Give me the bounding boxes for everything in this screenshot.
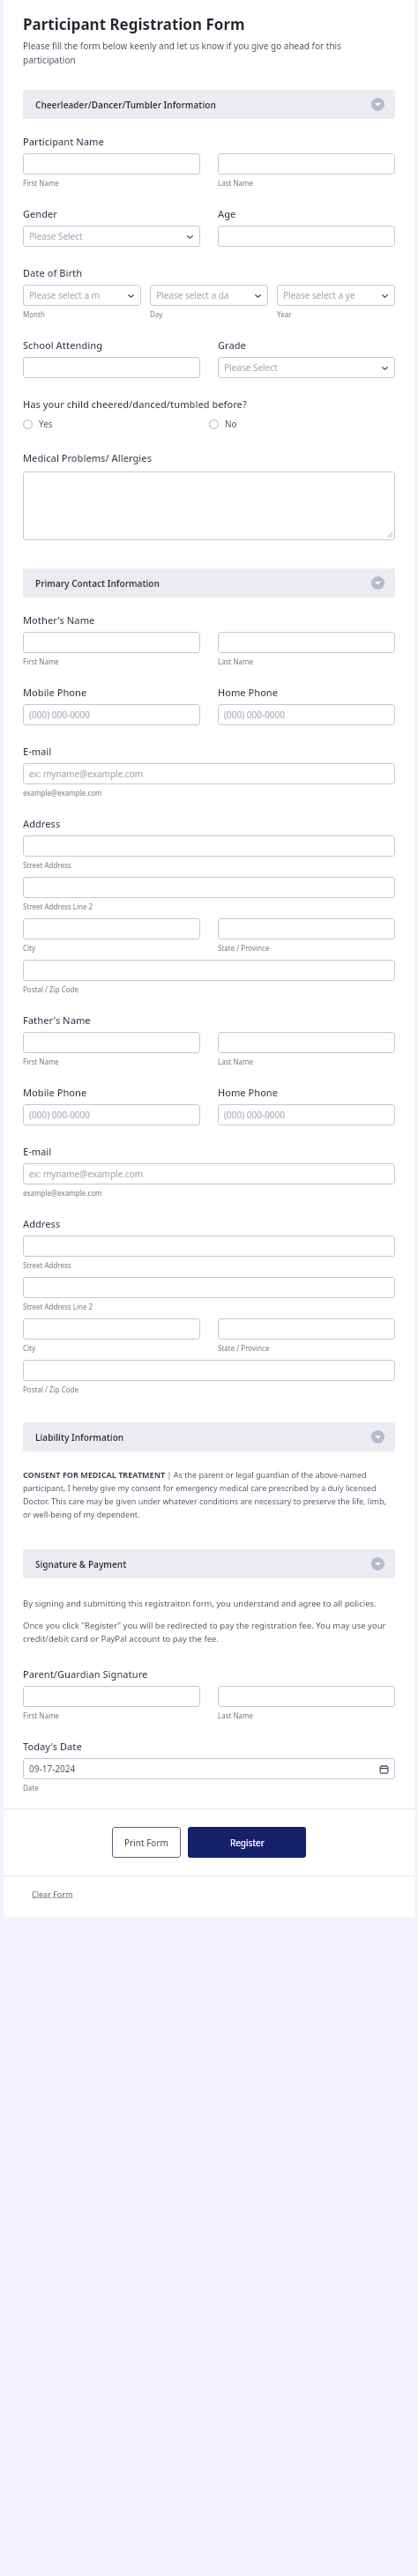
button[interactable]: 09-17-2024: [23, 1758, 395, 1779]
staticText: Medical Problems/ Allergies: [23, 451, 153, 464]
staticText: Gender: [23, 207, 57, 220]
other: Collapse Signature & Payment: [371, 1557, 384, 1570]
button[interactable]: [23, 877, 395, 898]
staticText: example@example.com: [23, 788, 102, 798]
staticText: Has your child cheered/danced/tumbled be…: [23, 397, 247, 411]
button[interactable]: [218, 918, 395, 939]
button[interactable]: Cheerleader/Dancer/Tumbler Information: [23, 90, 395, 119]
staticText: State / Province: [218, 943, 270, 953]
staticText: Last Name: [218, 1057, 254, 1066]
staticText: Mobile Phone: [23, 686, 87, 699]
button[interactable]: Liability Information: [23, 1422, 395, 1451]
staticText: ex: myname@example.com: [29, 768, 144, 780]
staticText: First Name: [23, 1711, 59, 1720]
button[interactable]: [218, 1318, 395, 1340]
staticText: Please select a m: [29, 289, 101, 301]
staticText: 09-17-2024: [29, 1763, 76, 1775]
staticText: Primary Contact Information: [35, 577, 160, 590]
staticText: Today's Date: [23, 1740, 82, 1753]
staticText: Last Name: [218, 178, 254, 188]
button[interactable]: [218, 226, 395, 247]
button[interactable]: Please select a m: [23, 285, 141, 306]
button[interactable]: Clear Form: [32, 1889, 73, 1899]
button[interactable]: Yes: [23, 418, 209, 430]
staticText: Street Address: [23, 1260, 71, 1270]
button[interactable]: [218, 1686, 395, 1707]
staticText: State / Province: [218, 1343, 270, 1353]
button[interactable]: [218, 632, 395, 653]
staticText: Street Address Line 2: [23, 1302, 93, 1311]
staticText: E-mail: [23, 745, 52, 758]
staticText: Date of Birth: [23, 266, 83, 279]
staticText: Month: [23, 309, 45, 319]
button[interactable]: Register: [188, 1827, 306, 1858]
staticText: (000) 000-0000: [224, 1109, 286, 1121]
button[interactable]: No: [209, 418, 395, 430]
staticText: First Name: [23, 657, 59, 666]
staticText: ex: myname@example.com: [29, 1168, 144, 1180]
button[interactable]: Please select a da: [150, 285, 268, 306]
button[interactable]: [23, 1032, 200, 1053]
button[interactable]: Primary Contact Information: [23, 568, 395, 598]
other: Collapse Liability Information: [371, 1430, 384, 1444]
staticText: Home Phone: [218, 1086, 279, 1099]
staticText: First Name: [23, 178, 59, 188]
button[interactable]: (000) 000-0000: [218, 704, 395, 725]
button[interactable]: [23, 471, 395, 540]
button[interactable]: [23, 1360, 395, 1381]
staticText: Postal / Zip Code: [23, 984, 79, 994]
staticText: Father's Name: [23, 1013, 91, 1027]
staticText: (000) 000-0000: [29, 1109, 91, 1121]
staticText: Mobile Phone: [23, 1086, 87, 1099]
staticText: City: [23, 943, 36, 953]
staticText: Print Form: [124, 1837, 168, 1849]
staticText: First Name: [23, 1057, 59, 1066]
button[interactable]: [23, 960, 395, 981]
staticText: example@example.com: [23, 1188, 102, 1198]
staticText: Day: [150, 309, 163, 319]
button[interactable]: ex: myname@example.com: [23, 1163, 395, 1184]
button[interactable]: [23, 1236, 395, 1257]
staticText: Cheerleader/Dancer/Tumbler Information: [35, 99, 216, 111]
button[interactable]: [218, 1032, 395, 1053]
button[interactable]: ex: myname@example.com: [23, 763, 395, 784]
button[interactable]: Please Select: [23, 226, 200, 247]
staticText: Yes: [39, 418, 53, 430]
button[interactable]: Print Form: [112, 1827, 181, 1858]
staticText: Address: [23, 817, 61, 830]
staticText: By signing and submitting this registrai…: [23, 1598, 377, 1609]
staticText: Home Phone: [218, 686, 279, 699]
button[interactable]: [23, 357, 200, 378]
staticText: Age: [218, 207, 236, 220]
button[interactable]: Please select a ye: [277, 285, 395, 306]
staticText: Last Name: [218, 657, 254, 666]
button[interactable]: [23, 1318, 200, 1340]
staticText: Please fill the form below keenly and le…: [23, 40, 395, 65]
button[interactable]: (000) 000-0000: [218, 1104, 395, 1125]
staticText: Please Select: [224, 361, 278, 374]
staticText: Mother's Name: [23, 613, 95, 627]
button[interactable]: [23, 835, 395, 857]
staticText: Address: [23, 1217, 61, 1230]
button[interactable]: [23, 918, 200, 939]
staticText: No: [225, 418, 237, 430]
staticText: E-mail: [23, 1145, 52, 1158]
button[interactable]: (000) 000-0000: [23, 704, 200, 725]
staticText: Date: [23, 1783, 39, 1793]
button[interactable]: (000) 000-0000: [23, 1104, 200, 1125]
button[interactable]: Signature & Payment: [23, 1549, 395, 1578]
staticText: Participant Name: [23, 135, 104, 148]
button[interactable]: [23, 1686, 200, 1707]
staticText: Postal / Zip Code: [23, 1385, 79, 1394]
button[interactable]: [23, 153, 200, 174]
other: Collapse Cheerleader/Dancer/Tumbler Info…: [371, 98, 384, 111]
staticText: Please select a da: [156, 289, 229, 301]
button[interactable]: [23, 632, 200, 653]
button[interactable]: Please Select: [218, 357, 395, 378]
staticText: Participant Registration Form: [23, 14, 245, 34]
button[interactable]: [218, 153, 395, 174]
button[interactable]: [23, 1277, 395, 1298]
staticText: Street Address: [23, 860, 71, 870]
staticText: Parent/Guardian Signature: [23, 1667, 148, 1681]
staticText: Once you click "Register" you will be re…: [23, 1620, 395, 1644]
